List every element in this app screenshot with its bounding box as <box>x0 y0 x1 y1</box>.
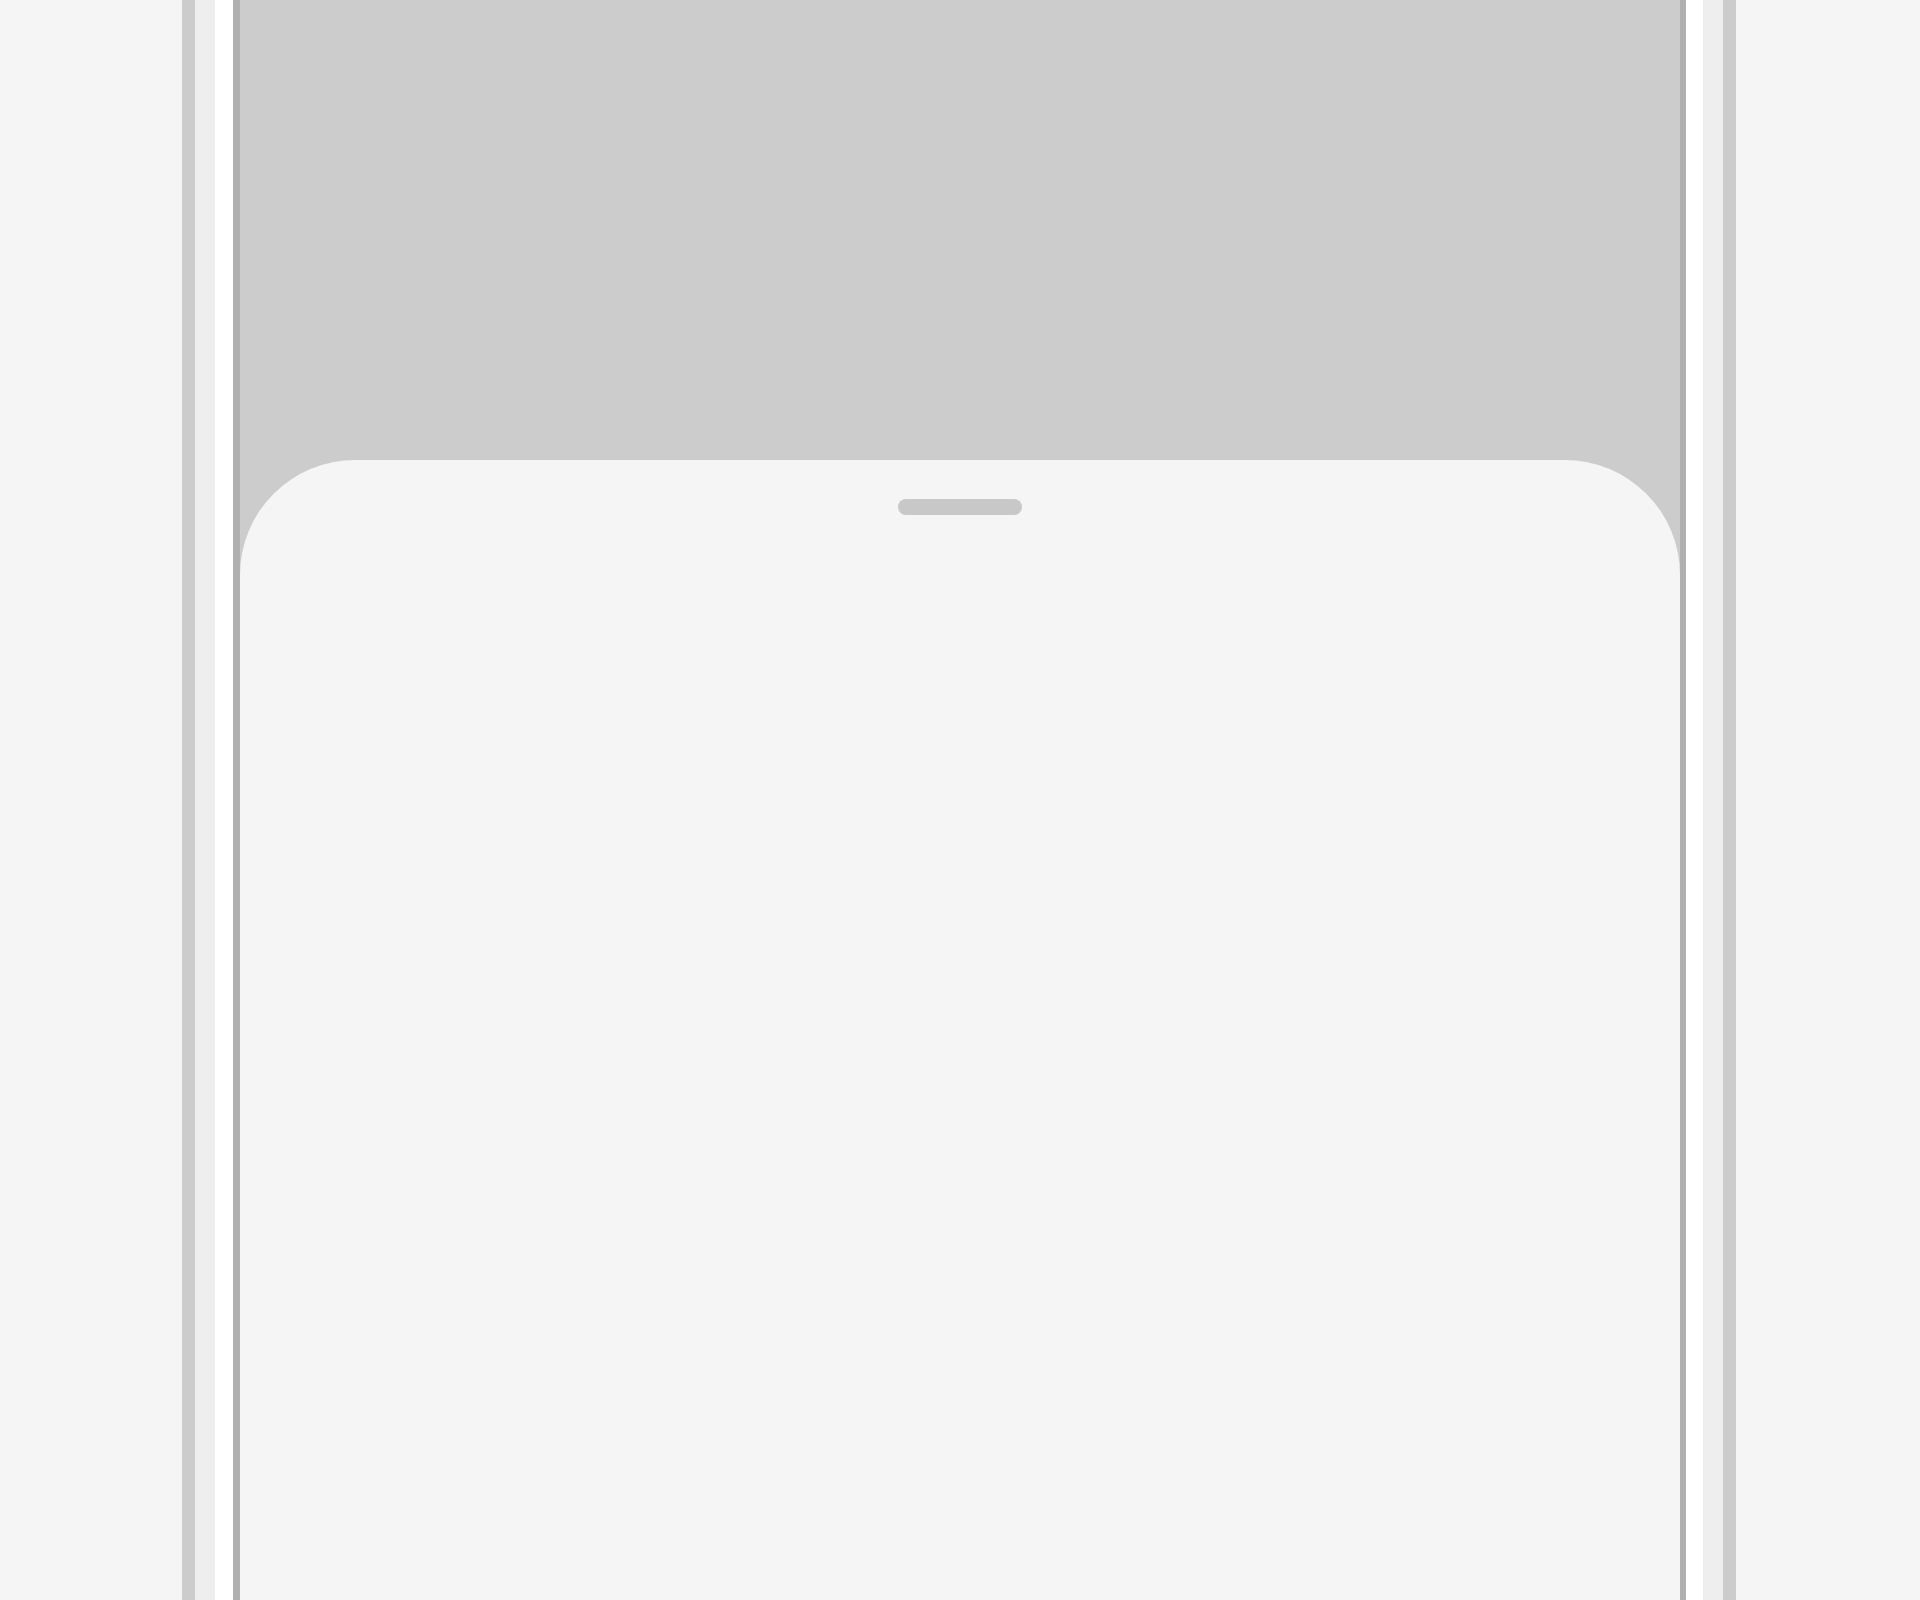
button[interactable]: Dismiss <box>240 0 1680 1600</box>
button[interactable]: Drag handle <box>898 499 1022 515</box>
